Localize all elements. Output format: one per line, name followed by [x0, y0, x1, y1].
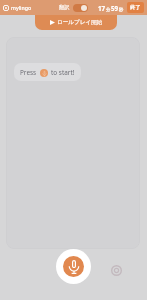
button[interactable]: Record	[56, 249, 91, 284]
staticText: 59	[111, 4, 119, 12]
staticText: 秒	[119, 7, 124, 12]
staticText: ロールプレイ開始	[57, 19, 103, 26]
button[interactable]: ロールプレイ開始	[35, 15, 117, 30]
button[interactable]: 終了	[127, 2, 144, 13]
staticText: 17	[98, 4, 106, 12]
staticText: Press	[20, 68, 37, 77]
button[interactable]: Help	[109, 263, 124, 278]
staticText: 分	[106, 7, 111, 12]
staticText: 終了	[130, 4, 141, 11]
button[interactable]: Translation toggle	[73, 4, 88, 12]
staticText: 翻訳	[59, 4, 70, 11]
staticText: mylingo	[11, 4, 32, 11]
staticText: to start!	[51, 68, 75, 77]
